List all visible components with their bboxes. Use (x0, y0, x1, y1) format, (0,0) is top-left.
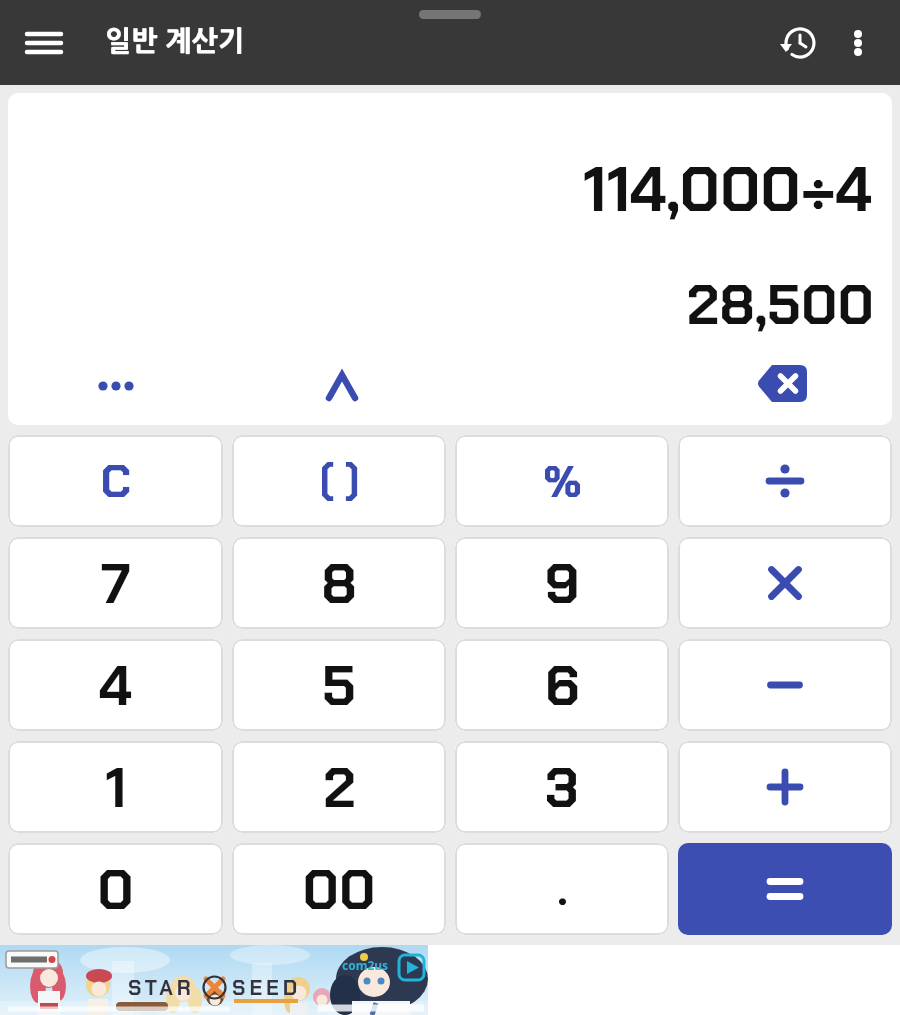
button[interactable]: 3 (455, 741, 669, 833)
button[interactable]: 0 (8, 843, 223, 935)
staticText: 0 (97, 853, 134, 926)
button[interactable] (678, 843, 892, 935)
staticText: 일반 계산기 (105, 27, 245, 55)
button[interactable]: STAR (0, 945, 428, 1015)
button[interactable] (678, 639, 892, 731)
button[interactable]: 6 (455, 639, 669, 731)
button[interactable] (314, 364, 370, 408)
staticText: 6 (545, 649, 580, 722)
staticText: 00 (302, 853, 376, 926)
button[interactable]: 5 (232, 639, 446, 731)
staticText: SEED (232, 974, 302, 1001)
staticText: 1 (105, 751, 127, 824)
button[interactable] (85, 371, 151, 401)
staticText: 28,500 (687, 268, 875, 341)
button[interactable] (776, 20, 822, 66)
button[interactable]: 2 (232, 741, 446, 833)
staticText: 4 (99, 649, 132, 722)
staticText: 9 (544, 547, 580, 620)
button[interactable] (678, 537, 892, 629)
button[interactable] (838, 23, 878, 63)
button[interactable] (678, 741, 892, 833)
button[interactable] (678, 435, 892, 527)
staticText: 114,000÷4 (583, 149, 872, 230)
staticText: 5 (322, 649, 356, 722)
button[interactable]: 00 (232, 843, 446, 935)
button[interactable]: ( ) (232, 435, 446, 527)
button[interactable]: C (8, 435, 223, 527)
staticText: 8 (321, 547, 357, 620)
button[interactable] (750, 357, 814, 409)
button[interactable]: % (455, 435, 669, 527)
staticText: STAR (128, 974, 195, 1001)
staticText: 7 (101, 547, 131, 620)
button[interactable] (20, 21, 68, 65)
button[interactable]: 4 (8, 639, 223, 731)
staticText: com2us (342, 957, 389, 973)
button[interactable]: 8 (232, 537, 446, 629)
button[interactable]: . (455, 843, 669, 935)
staticText: ( ) (319, 454, 360, 509)
button[interactable]: 7 (8, 537, 223, 629)
staticText: % (543, 453, 582, 510)
button[interactable]: 1 (8, 741, 223, 833)
button[interactable]: 9 (455, 537, 669, 629)
staticText: 3 (545, 751, 579, 824)
staticText: 2 (323, 751, 356, 824)
staticText: . (557, 861, 568, 918)
staticText: C (100, 451, 131, 511)
